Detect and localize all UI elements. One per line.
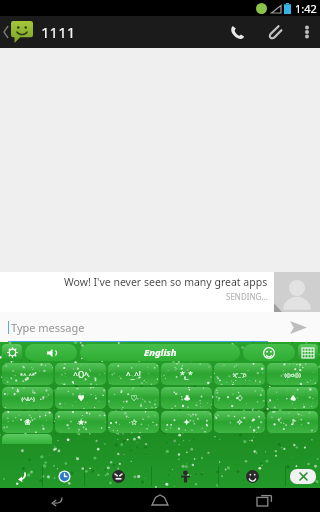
button[interactable]: ♡ [108,387,159,409]
button[interactable]: Keyboard settings [2,344,22,361]
button[interactable]: Send [276,312,320,342]
button[interactable]: Attach [256,16,294,48]
button[interactable]: ★ [55,411,106,433]
button[interactable]: Call [218,16,256,48]
button[interactable]: ♠ [267,387,318,409]
staticText: 1111 [41,22,76,42]
staticText: ♢ [236,394,244,403]
button[interactable]: Emoticons [85,464,152,488]
button[interactable]: Back [0,464,43,488]
button[interactable]: ✦ [161,411,212,433]
button[interactable]: ❀ [2,411,53,433]
staticText: ✧ [236,418,243,427]
staticText: English [144,346,177,359]
staticText: ☆ [130,418,138,427]
staticText: (^Δ^) [21,395,35,402]
staticText: ^O^ [73,369,89,380]
button[interactable]: Emoji [243,344,295,361]
button[interactable]: More options [294,16,320,48]
button[interactable]: ♣ [161,387,212,409]
button[interactable]: Back to conversations [0,16,35,48]
staticText: ♪ [290,418,296,427]
button[interactable]: ✧ [214,411,265,433]
button[interactable]: Symbols [152,464,219,488]
staticText: Type message [11,320,85,335]
button[interactable]: ♥ [55,387,106,409]
staticText: ❀ [24,418,31,427]
staticText: Wow! I've never seen so many great apps [64,275,268,289]
staticText: *_* [180,369,193,380]
button[interactable]: Wow! I've never seen so many great apps [0,272,274,312]
staticText: ^_^! [126,369,141,380]
button[interactable]: ♪ [267,411,318,433]
button[interactable]: ♢ [214,387,265,409]
button[interactable]: ☆ [108,411,159,433]
staticText: *^_^* [20,371,35,378]
staticText: ♠ [289,394,297,403]
button[interactable]: Smileys [219,464,286,488]
button[interactable]: Delete [286,464,320,488]
staticText: ✦ [183,418,190,427]
staticText: ♣ [183,394,191,403]
staticText: SENDING... [226,291,268,302]
button[interactable]: *^_^* [2,363,53,385]
button[interactable]: (^Δ^) [2,387,53,409]
staticText: 1:42 [295,1,317,16]
button[interactable]: Back [27,488,85,512]
button[interactable] [2,434,52,444]
button[interactable]: English [80,344,240,361]
button[interactable]: Type message [0,312,276,342]
staticText: ｼ(′_`)ｼ [232,371,247,378]
button[interactable]: (◎o◎) [267,363,318,385]
button[interactable]: ^_^! [108,363,159,385]
button[interactable]: Recent apps [235,488,293,512]
button[interactable]: ^O^ [55,363,106,385]
button[interactable]: Home [131,488,189,512]
staticText: (◎o◎) [284,371,301,378]
staticText: ♥ [77,394,85,403]
button[interactable]: Keyboard layout [298,344,318,361]
staticText: ♡ [130,394,138,403]
button[interactable]: Sound [25,344,77,361]
staticText: ★ [77,418,85,427]
button[interactable]: ｼ(′_`)ｼ [214,363,265,385]
button[interactable]: Recent [43,464,85,488]
button[interactable]: *_* [161,363,212,385]
